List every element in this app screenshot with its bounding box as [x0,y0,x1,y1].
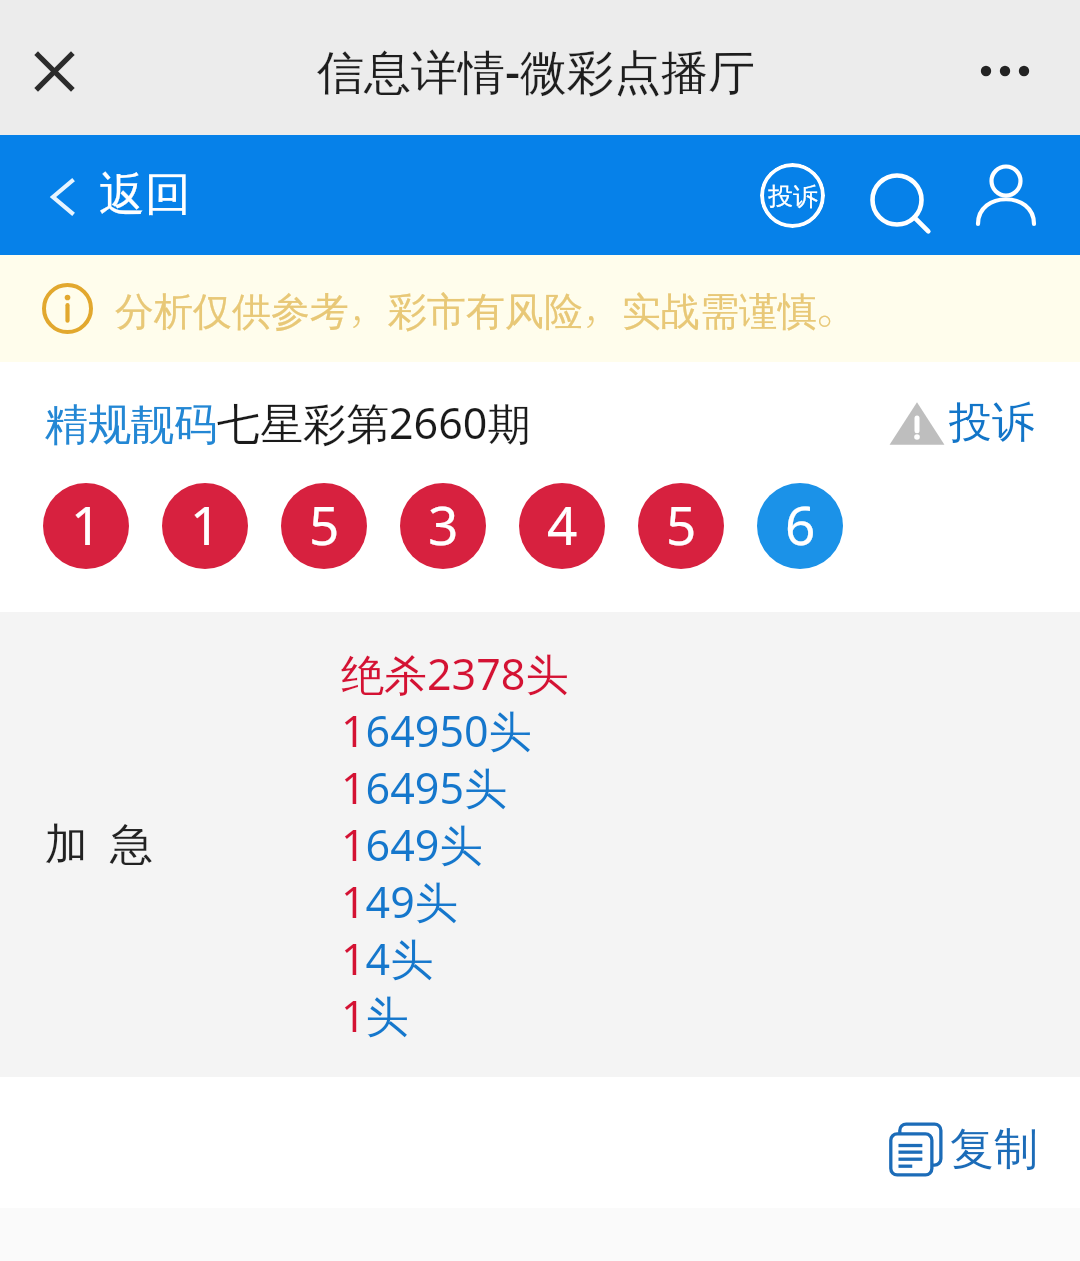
button[interactable]: 4 [519,483,605,569]
button[interactable]: Close [10,27,98,115]
staticText: 加 急 [45,813,154,872]
staticText: 信息详情-微彩点播厅 [317,39,756,103]
button[interactable]: 复制 [890,1122,1038,1177]
button[interactable]: Search [842,149,934,241]
staticText: 复制 [950,1122,1038,1177]
staticText: 精规靓码七星彩第2660期 [45,393,531,452]
staticText: 1 [190,488,221,560]
button[interactable]: 1 [162,483,248,569]
staticText: 5 [666,488,697,560]
staticText: 返回 [99,166,191,224]
staticText: 5 [309,488,340,560]
staticText: 6 [785,488,816,560]
button[interactable]: 5 [638,483,724,569]
staticText: 164950头 [341,701,532,758]
button[interactable]: 投诉 [889,396,1035,450]
staticText: 投诉 [768,181,818,212]
button[interactable]: More options [961,27,1049,115]
staticText: 投诉 [949,396,1035,450]
button[interactable]: 返回 [51,135,191,255]
staticText: 14头 [341,929,434,986]
staticText: 绝杀2378头 [341,644,569,701]
button[interactable]: 投诉 [746,149,838,241]
staticText: 1头 [341,986,409,1043]
button[interactable]: 1 [43,483,129,569]
staticText: 3 [428,488,459,560]
button[interactable]: 6 [757,483,843,569]
staticText: 1649头 [341,815,483,872]
staticText: 4 [547,488,578,560]
staticText: 分析仅供参考，彩市有风险，实战需谨慎。 [115,280,857,337]
staticText: 149头 [341,872,458,929]
button[interactable]: 5 [281,483,367,569]
button[interactable]: 3 [400,483,486,569]
staticText: 16495头 [341,758,507,815]
staticText: 1 [71,488,102,560]
button[interactable]: Profile [960,149,1052,241]
